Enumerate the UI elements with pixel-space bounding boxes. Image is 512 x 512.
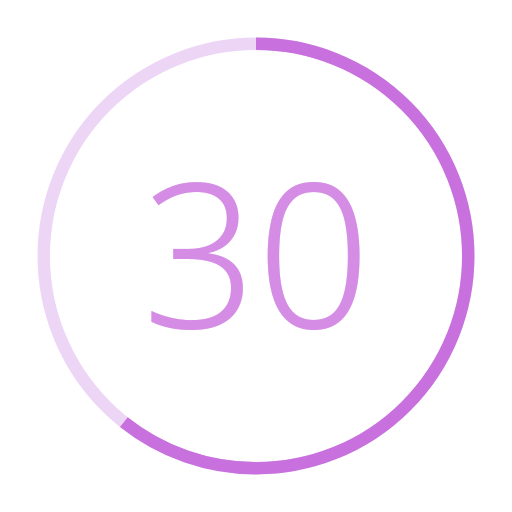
button[interactable]: Countdown timer 30 seconds [0, 0, 512, 512]
staticText: 30 [142, 114, 371, 386]
